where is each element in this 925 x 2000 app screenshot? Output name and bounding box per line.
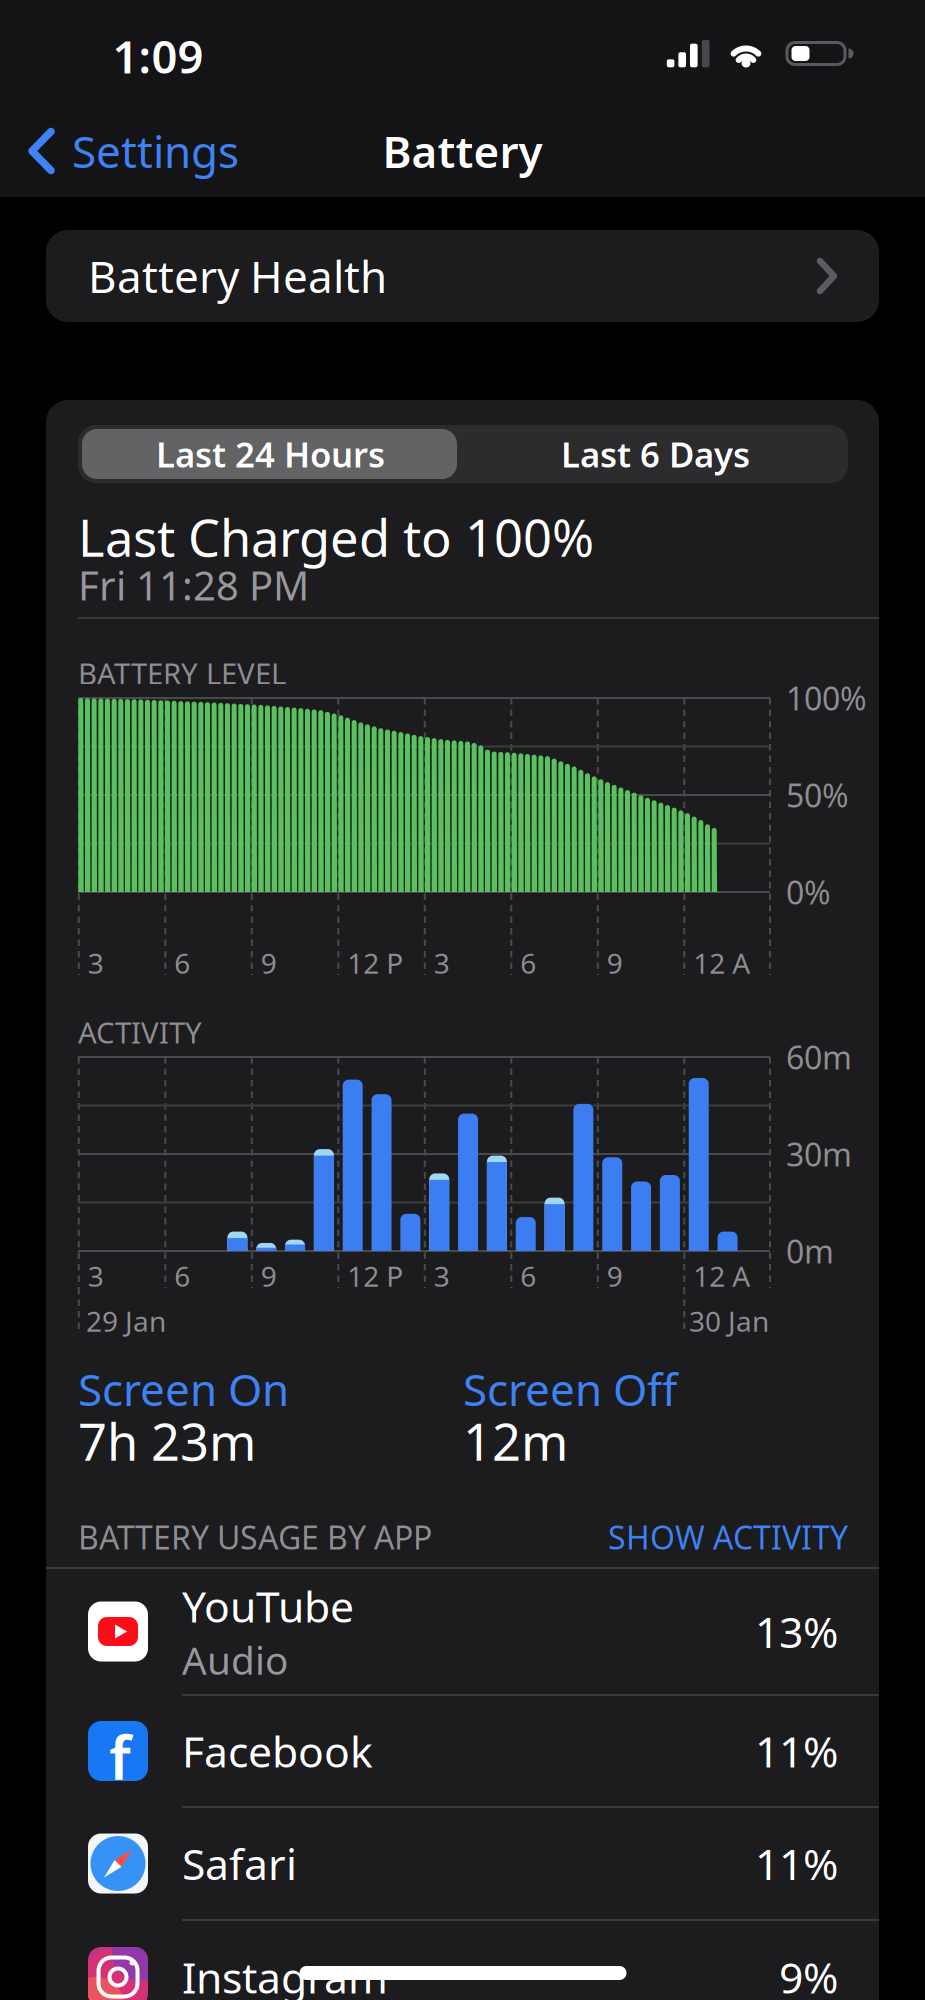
staticText: 11% <box>755 1723 838 1779</box>
staticText: 9 <box>607 1257 623 1295</box>
staticText: 29 Jan <box>86 1302 166 1340</box>
staticText: YouTube <box>182 1577 354 1634</box>
staticText: Fri 11:28 PM <box>78 558 309 611</box>
staticText: Last Charged to 100% <box>78 503 594 571</box>
staticText: 9 <box>607 944 623 982</box>
staticText: 0m <box>786 1230 834 1272</box>
staticText: 7h 23m <box>78 1407 256 1475</box>
staticText: 3 <box>88 1257 104 1295</box>
staticText: Battery <box>382 122 542 180</box>
staticText: 3 <box>434 944 450 982</box>
staticText: 9% <box>779 1949 838 2000</box>
staticText: BATTERY USAGE BY APP <box>78 1516 432 1558</box>
staticText: Safari <box>182 1835 297 1892</box>
staticText: 100% <box>786 677 867 719</box>
staticText: Last 24 Hours <box>156 431 385 477</box>
button[interactable]: Battery Health <box>46 230 879 322</box>
button[interactable]: Safari <box>46 1807 879 1920</box>
staticText: 6 <box>174 1257 190 1295</box>
staticText: 6 <box>174 944 190 982</box>
staticText: 11% <box>755 1835 838 1892</box>
button[interactable]: Settings <box>29 121 289 181</box>
staticText: 12 A <box>693 1257 750 1295</box>
staticText: 12 P <box>347 1257 403 1295</box>
staticText: 9 <box>261 1257 277 1295</box>
staticText: Screen On <box>78 1360 289 1418</box>
staticText: BATTERY LEVEL <box>78 653 286 692</box>
staticText: Settings <box>72 122 239 180</box>
staticText: f <box>109 1718 131 1796</box>
staticText: 6 <box>520 1257 536 1295</box>
staticText: Audio <box>182 1634 288 1685</box>
staticText: 12 P <box>347 944 403 982</box>
staticText: Facebook <box>182 1723 373 1779</box>
staticText: 50% <box>786 774 849 816</box>
staticText: Last 6 Days <box>561 431 750 477</box>
staticText: 12 A <box>693 944 750 982</box>
button[interactable]: Last 6 Days <box>463 425 848 483</box>
staticText: Battery Health <box>88 247 387 305</box>
button[interactable]: Instagram <box>46 1920 879 2000</box>
staticText: 30 Jan <box>689 1302 769 1340</box>
staticText: 0% <box>786 871 831 913</box>
staticText: 3 <box>88 944 104 982</box>
staticText: Instagram <box>182 1949 388 2000</box>
staticText: 30m <box>786 1133 852 1175</box>
button[interactable]: SHOW ACTIVITY <box>448 1516 848 1558</box>
button[interactable]: f <box>46 1695 879 1807</box>
staticText: 1:09 <box>112 26 203 86</box>
staticText: Screen Off <box>463 1360 677 1418</box>
button[interactable]: YouTube <box>46 1568 879 1695</box>
staticText: 12m <box>463 1407 568 1475</box>
button[interactable]: Last 24 Hours <box>78 425 463 483</box>
staticText: 9 <box>261 944 277 982</box>
staticText: 3 <box>434 1257 450 1295</box>
staticText: 60m <box>786 1036 852 1078</box>
staticText: SHOW ACTIVITY <box>608 1516 848 1558</box>
staticText: 6 <box>520 944 536 982</box>
staticText: 13% <box>755 1603 838 1660</box>
staticText: ACTIVITY <box>78 1012 202 1051</box>
